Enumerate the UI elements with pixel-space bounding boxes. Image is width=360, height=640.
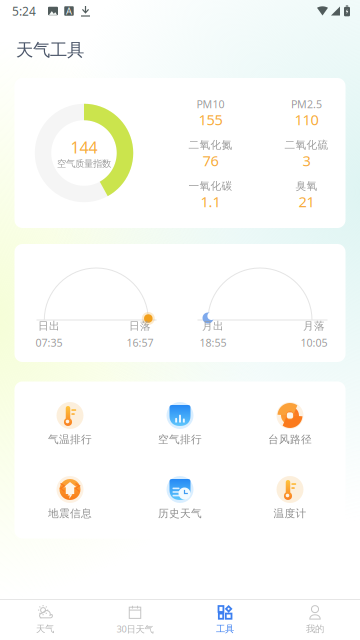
staticText: 日出 (38, 319, 60, 332)
staticText: 我的 (306, 623, 324, 635)
staticText: 16:57 (126, 335, 153, 350)
button[interactable]: 台风路径 (235, 395, 345, 457)
staticText: 144 (70, 137, 97, 158)
staticText: 月落 (303, 319, 325, 332)
staticText: 空气质量指数 (57, 158, 111, 169)
staticText: 天气 (36, 623, 54, 635)
staticText: 一氧化碳 (188, 179, 232, 192)
staticText: 二氧化硫 (284, 138, 328, 151)
staticText: 温度计 (273, 507, 306, 520)
staticText: 76 (202, 151, 218, 170)
staticText: 3 (302, 151, 310, 170)
staticText: 07:35 (35, 335, 62, 350)
staticText: PM10 (196, 97, 224, 111)
button[interactable]: 温度计 (235, 469, 345, 531)
staticText: 二氧化氮 (188, 138, 232, 151)
staticText: A (66, 5, 72, 17)
staticText: 10:05 (300, 335, 327, 350)
staticText: 天气工具 (16, 39, 84, 61)
button[interactable]: 天气 (0, 599, 90, 640)
staticText: 21 (298, 192, 314, 211)
button[interactable]: 空气排行 (125, 395, 235, 457)
button[interactable]: 工具 (180, 599, 270, 640)
staticText: 历史天气 (158, 507, 202, 520)
staticText: 台风路径 (268, 433, 312, 446)
staticText: 气温排行 (48, 433, 92, 446)
staticText: 空气排行 (158, 433, 202, 446)
button[interactable]: 历史天气 (125, 469, 235, 531)
staticText: 工具 (216, 623, 234, 635)
staticText: 5:24 (12, 3, 36, 19)
staticText: 18:55 (199, 335, 226, 350)
staticText: 臭氧 (295, 179, 317, 192)
button[interactable]: 30日天气 (90, 599, 180, 640)
staticText: PM2.5 (291, 97, 322, 111)
button[interactable]: 我的 (270, 599, 360, 640)
staticText: 1.1 (200, 192, 220, 211)
staticText: 地震信息 (48, 507, 92, 520)
button[interactable]: 地震信息 (15, 469, 125, 531)
staticText: 月出 (202, 319, 224, 332)
staticText: 30日天气 (116, 623, 153, 635)
button[interactable]: 气温排行 (15, 395, 125, 457)
staticText: 日落 (129, 319, 151, 332)
staticText: 110 (294, 110, 318, 129)
staticText: 155 (198, 110, 222, 129)
